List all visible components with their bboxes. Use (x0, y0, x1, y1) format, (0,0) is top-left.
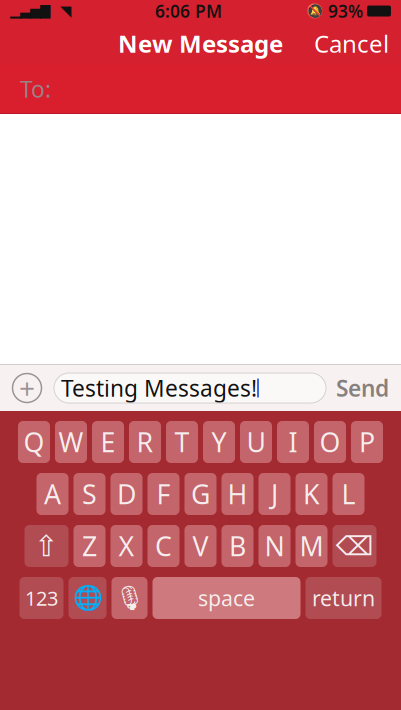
button[interactable]: return (305, 577, 381, 619)
button[interactable]: G (184, 473, 216, 515)
button[interactable]: C (147, 525, 179, 567)
button[interactable]: A (36, 473, 68, 515)
staticText: return (312, 584, 375, 612)
staticText: 93% (328, 0, 363, 22)
button[interactable]: D (110, 473, 142, 515)
staticText: Y (211, 424, 226, 460)
button[interactable]: F (147, 473, 179, 515)
staticText: F (156, 476, 170, 512)
staticText: E (100, 424, 115, 460)
staticText: J (271, 476, 278, 512)
staticText: Send (336, 373, 389, 403)
button[interactable]: Y (203, 421, 235, 463)
button[interactable]: B (221, 525, 253, 567)
button[interactable]: U (240, 421, 272, 463)
button[interactable]: O (314, 421, 346, 463)
button[interactable]: J (258, 473, 290, 515)
staticText: Q (23, 424, 44, 460)
button[interactable]: Next keyboard (68, 577, 106, 619)
button[interactable]: H (221, 473, 253, 515)
staticText: V (192, 528, 208, 564)
staticText: P (359, 424, 375, 460)
staticText: S (82, 476, 97, 512)
staticText: ◥ (60, 3, 71, 19)
staticText: G (191, 476, 210, 512)
staticText: U (246, 424, 265, 460)
staticText: I (288, 424, 297, 460)
staticText: O (319, 424, 340, 460)
staticText: New Message (118, 28, 283, 59)
button[interactable]: R (129, 421, 161, 463)
button[interactable]: E (92, 421, 124, 463)
button[interactable]: Dictate (111, 577, 147, 619)
staticText: D (117, 476, 136, 512)
staticText: H (227, 476, 247, 512)
button[interactable]: Testing Messages! (54, 373, 326, 403)
staticText: Cancel (314, 28, 389, 59)
staticText: + (19, 369, 35, 407)
staticText: 🔕 (306, 3, 324, 19)
button[interactable]: X (110, 525, 142, 567)
staticText: ⇧ (34, 529, 59, 563)
staticText: X (118, 528, 134, 564)
button[interactable]: I (277, 421, 309, 463)
staticText: L (341, 476, 355, 512)
button[interactable]: N (258, 525, 290, 567)
staticText: 🌐 (72, 584, 102, 612)
button[interactable]: To: (0, 65, 401, 113)
button[interactable]: S (73, 473, 105, 515)
staticText: N (264, 528, 284, 564)
staticText: 6:06 PM (155, 0, 222, 22)
button[interactable]: P (351, 421, 383, 463)
button[interactable]: Delete (332, 525, 376, 567)
staticText: Testing Messages! (61, 373, 257, 403)
staticText: T (174, 424, 189, 460)
button[interactable]: Shift (24, 525, 68, 567)
staticText: ⌫ (335, 531, 373, 561)
button[interactable]: Z (73, 525, 105, 567)
button[interactable]: L (332, 473, 364, 515)
staticText: M (299, 528, 323, 564)
staticText: ▁▃▅▇ (10, 3, 50, 18)
button[interactable]: Q (18, 421, 50, 463)
staticText: To: (20, 74, 51, 104)
button[interactable]: T (166, 421, 198, 463)
button[interactable]: space (152, 577, 300, 619)
staticText: A (44, 476, 61, 512)
button[interactable]: Add attachment (10, 371, 44, 405)
button[interactable]: 123 (19, 577, 63, 619)
staticText: K (303, 476, 320, 512)
button[interactable]: Send (336, 373, 391, 403)
staticText: space (198, 584, 255, 612)
staticText: 🎙 (114, 584, 144, 612)
button[interactable]: K (295, 473, 327, 515)
button[interactable]: W (55, 421, 87, 463)
staticText: Z (82, 528, 97, 564)
staticText: W (58, 424, 83, 460)
button[interactable]: Cancel (302, 20, 401, 67)
button[interactable]: M (295, 525, 327, 567)
staticText: R (136, 424, 153, 460)
staticText: 123 (25, 585, 58, 611)
button[interactable]: V (184, 525, 216, 567)
staticText: B (229, 528, 246, 564)
staticText: C (155, 528, 172, 564)
